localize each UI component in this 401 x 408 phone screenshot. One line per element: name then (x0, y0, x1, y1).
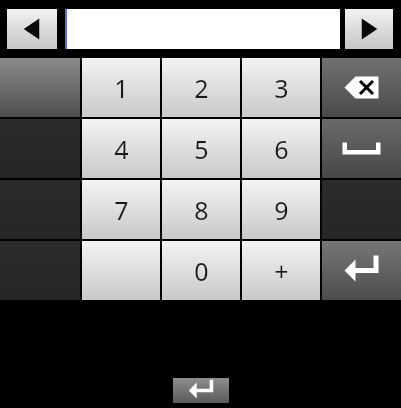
staticText: 5 (194, 132, 209, 166)
staticText: 7 (114, 193, 129, 227)
staticText: 2 (194, 71, 209, 105)
staticText: 8 (194, 193, 209, 227)
button[interactable]: Previous (7, 9, 57, 49)
button[interactable]: Space (322, 119, 401, 178)
button[interactable]: 4 (82, 119, 160, 178)
button[interactable]: 1 (82, 58, 160, 117)
button[interactable]: 9 (242, 180, 320, 239)
button[interactable]: Enter (173, 378, 229, 403)
staticText: 6 (274, 132, 289, 166)
staticText: 9 (274, 193, 289, 227)
staticText: 3 (274, 71, 289, 105)
staticText: + (274, 254, 289, 288)
button[interactable] (82, 241, 160, 300)
staticText: 0 (194, 254, 209, 288)
button[interactable]: 6 (242, 119, 320, 178)
button[interactable]: Enter (322, 241, 401, 300)
staticText: 1 (114, 71, 129, 105)
button[interactable] (65, 9, 340, 49)
button[interactable]: Backspace (322, 58, 401, 117)
button[interactable]: + (242, 241, 320, 300)
button[interactable]: 0 (162, 241, 240, 300)
button[interactable]: 2 (162, 58, 240, 117)
button[interactable]: 5 (162, 119, 240, 178)
button[interactable]: 7 (82, 180, 160, 239)
button[interactable]: 3 (242, 58, 320, 117)
button[interactable]: 8 (162, 180, 240, 239)
staticText: 4 (114, 132, 129, 166)
button[interactable]: Next (345, 9, 393, 49)
button[interactable]: Blank (0, 58, 80, 117)
